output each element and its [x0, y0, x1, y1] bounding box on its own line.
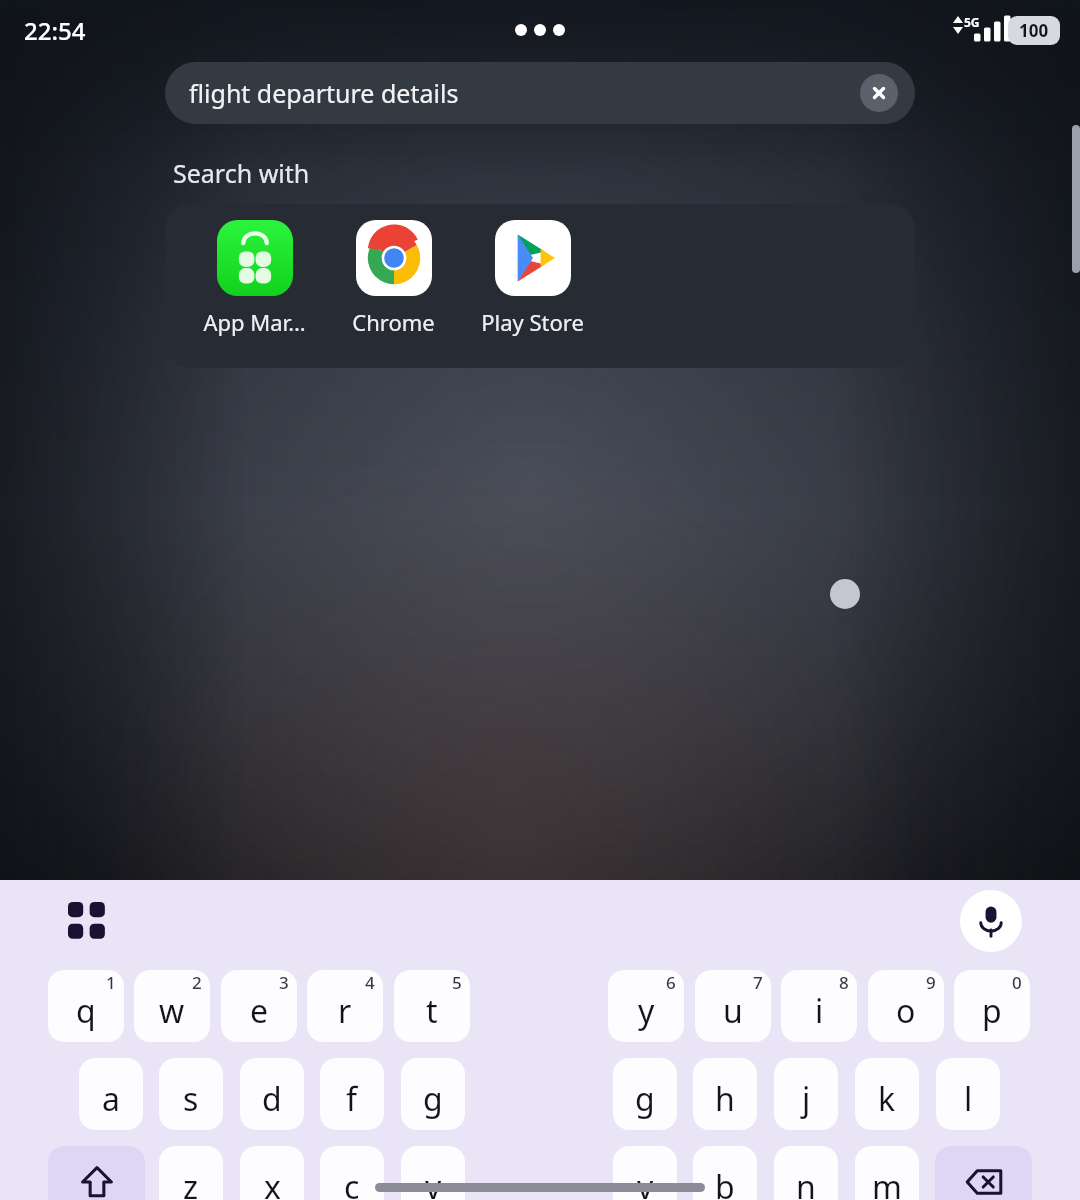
staticText: o [896, 989, 916, 1033]
staticText: m [872, 1165, 902, 1200]
button[interactable]: t [394, 970, 470, 1042]
button[interactable]: q [48, 970, 124, 1042]
staticText: w [159, 989, 185, 1033]
staticText: q [76, 989, 96, 1033]
staticText: 22:54 [24, 14, 86, 47]
button[interactable]: y [608, 970, 684, 1042]
staticText: t [426, 989, 438, 1033]
button[interactable]: v [401, 1146, 465, 1200]
button[interactable]: g [401, 1058, 465, 1130]
button[interactable]: g [613, 1058, 677, 1130]
button[interactable]: c [320, 1146, 384, 1200]
button[interactable]: x [240, 1146, 304, 1200]
button[interactable]: m [855, 1146, 919, 1200]
button[interactable]: j [774, 1058, 838, 1130]
button[interactable]: Chrome [324, 220, 463, 337]
staticText: 0 [1012, 971, 1022, 994]
button[interactable]: u [695, 970, 771, 1042]
button[interactable]: f [320, 1058, 384, 1130]
staticText: i [815, 989, 824, 1033]
staticText: b [715, 1165, 735, 1200]
staticText: a [102, 1077, 120, 1121]
staticText: 4 [365, 971, 375, 994]
staticText: j [802, 1077, 811, 1121]
staticText: g [423, 1077, 443, 1121]
button[interactable]: App Mar… [185, 220, 324, 337]
staticText: 1 [106, 971, 116, 994]
button[interactable]: a [79, 1058, 143, 1130]
button[interactable]: r [307, 970, 383, 1042]
staticText: 5G [964, 14, 980, 30]
staticText: p [982, 989, 1002, 1033]
button[interactable]: Play Store [463, 220, 602, 337]
staticText: flight departure details [189, 76, 459, 110]
staticText: n [796, 1165, 816, 1200]
staticText: 5 [452, 971, 462, 994]
button[interactable]: Change keyboard layout [58, 892, 116, 950]
button[interactable]: flight departure details [165, 62, 915, 124]
button[interactable]: Voice input [960, 890, 1022, 952]
staticText: g [635, 1077, 655, 1121]
button[interactable]: h [693, 1058, 757, 1130]
staticText: l [964, 1077, 973, 1121]
button[interactable]: v [613, 1146, 677, 1200]
staticText: 3 [279, 971, 289, 994]
staticText: s [183, 1077, 199, 1121]
staticText: c [344, 1165, 360, 1200]
staticText: 8 [839, 971, 849, 994]
staticText: y [638, 989, 655, 1033]
staticText: 7 [753, 971, 763, 994]
staticText: z [183, 1165, 199, 1200]
button[interactable]: n [774, 1146, 838, 1200]
staticText: 6 [666, 971, 676, 994]
button[interactable]: p [954, 970, 1030, 1042]
staticText: v [425, 1165, 442, 1200]
button[interactable]: z [159, 1146, 223, 1200]
staticText: 100 [1019, 19, 1049, 42]
button[interactable]: i [781, 970, 857, 1042]
staticText: u [723, 989, 743, 1033]
staticText: 9 [926, 971, 936, 994]
button[interactable]: Clear search [860, 74, 898, 112]
button[interactable]: Backspace [935, 1146, 1032, 1200]
staticText: x [264, 1165, 281, 1200]
staticText: k [878, 1077, 896, 1121]
staticText: Search with [173, 156, 310, 190]
button[interactable]: Shift [48, 1146, 145, 1200]
staticText: App Mar… [203, 307, 306, 337]
staticText: d [262, 1077, 282, 1121]
button[interactable]: e [221, 970, 297, 1042]
button[interactable]: s [159, 1058, 223, 1130]
button[interactable]: k [855, 1058, 919, 1130]
staticText: h [715, 1077, 735, 1121]
staticText: Chrome [352, 307, 435, 337]
button[interactable]: w [134, 970, 210, 1042]
staticText: e [250, 989, 269, 1033]
button[interactable]: o [868, 970, 944, 1042]
button[interactable]: l [936, 1058, 1000, 1130]
staticText: r [338, 989, 352, 1033]
staticText: Play Store [481, 307, 584, 337]
button[interactable]: b [693, 1146, 757, 1200]
staticText: v [637, 1165, 654, 1200]
staticText: f [346, 1077, 358, 1121]
button[interactable]: d [240, 1058, 304, 1130]
staticText: 2 [192, 971, 202, 994]
